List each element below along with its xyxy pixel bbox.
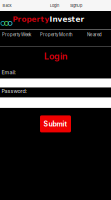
button[interactable]: Property Week [0, 32, 31, 37]
staticText: Email: [2, 69, 17, 75]
staticText: Submit [43, 120, 67, 128]
staticText: Login [50, 3, 59, 8]
button[interactable]: Property Month [40, 32, 73, 37]
staticText: Login [44, 51, 67, 62]
staticText: Invester [49, 15, 84, 23]
staticText: Back [3, 3, 12, 8]
button[interactable]: Submit [40, 115, 71, 132]
button[interactable]: Login [50, 0, 59, 11]
staticText: Property Month [40, 32, 73, 37]
button[interactable]: Neared [87, 32, 102, 37]
staticText: SignUp [70, 3, 82, 8]
staticText: Property Week [2, 32, 31, 37]
button[interactable]: Back [0, 0, 12, 11]
button[interactable]: SignUp [70, 0, 82, 11]
staticText: Password: [2, 88, 28, 94]
staticText: Neared [87, 32, 102, 37]
staticText: Property [12, 15, 49, 23]
